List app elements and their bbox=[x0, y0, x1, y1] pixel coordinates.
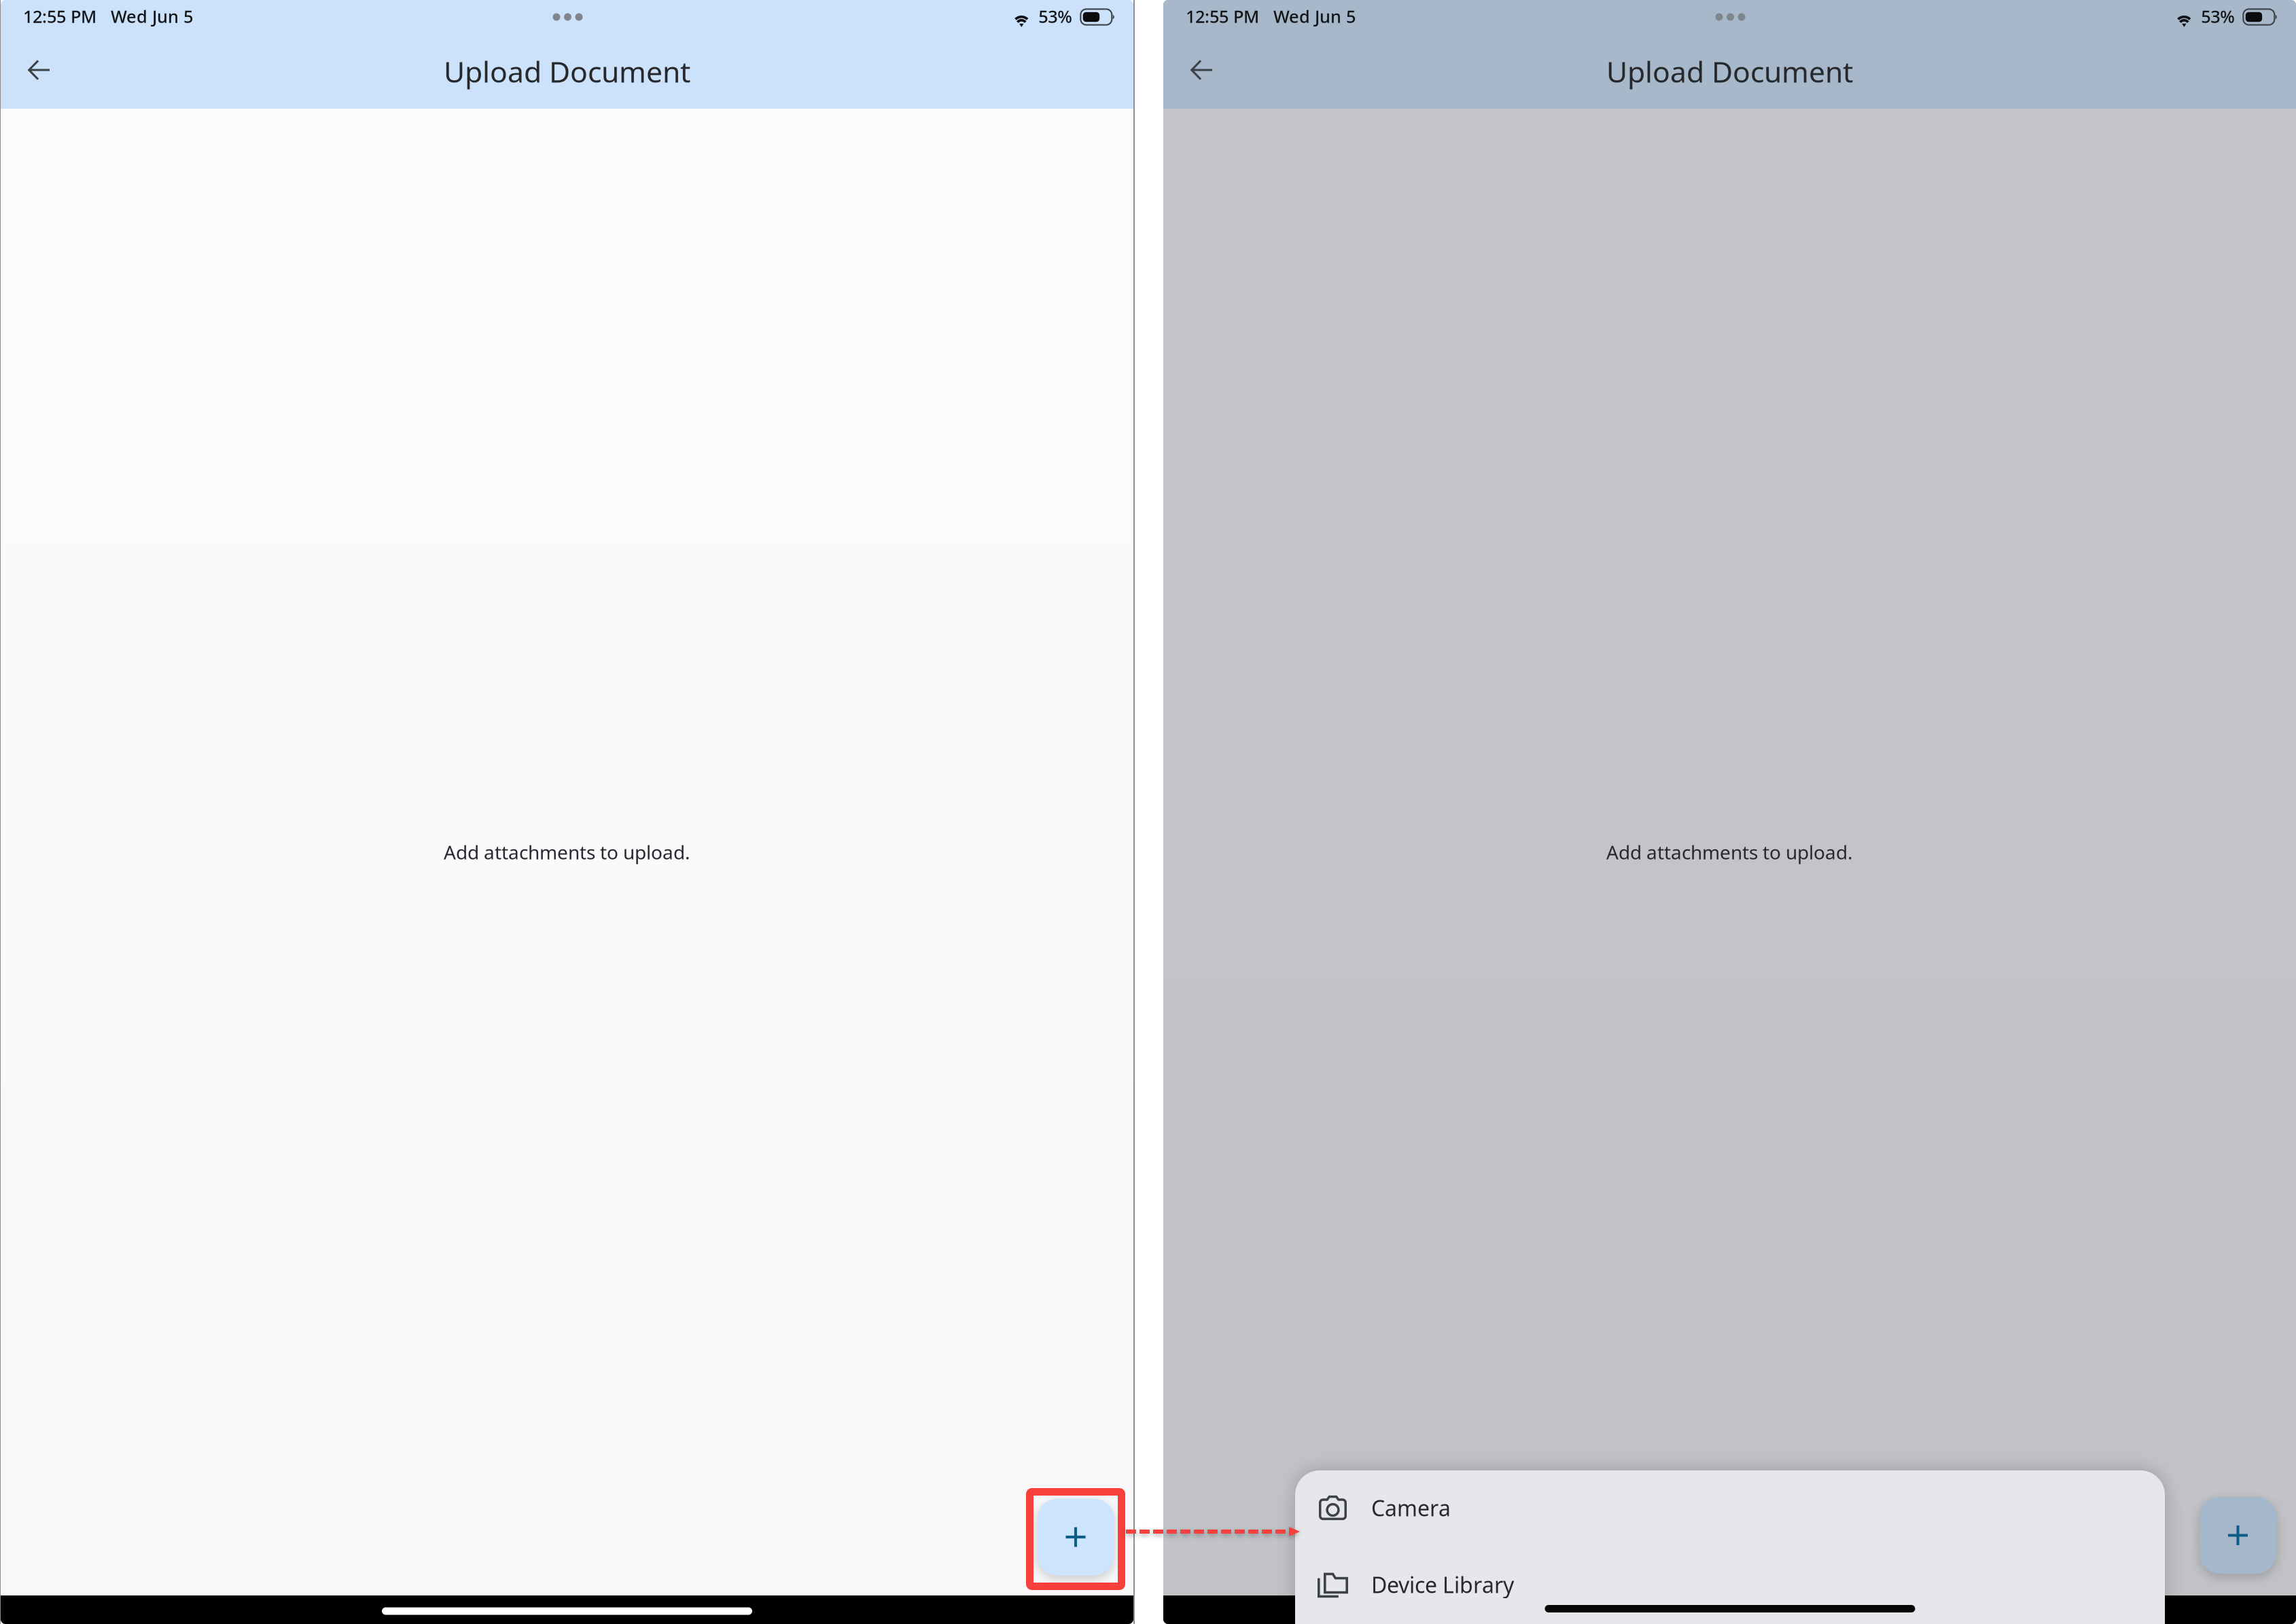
staticText: Add attachments to upload. bbox=[1606, 839, 1853, 865]
staticText: Upload Document bbox=[444, 52, 690, 91]
button[interactable]: Back bbox=[7, 42, 72, 109]
button[interactable]: Add attachment bbox=[2200, 1497, 2276, 1574]
button[interactable]: Device Library bbox=[1295, 1547, 2165, 1623]
staticText: 12:55 PM Wed Jun 5 bbox=[23, 5, 193, 28]
staticText: Add attachments to upload. bbox=[444, 839, 690, 865]
staticText: Device Library bbox=[1371, 1570, 1514, 1599]
button[interactable]: Back bbox=[1169, 42, 1235, 109]
staticText: 53% bbox=[1038, 5, 1072, 28]
button[interactable]: Add attachment bbox=[1037, 1499, 1114, 1575]
button[interactable]: Camera bbox=[1295, 1470, 2165, 1546]
staticText: 53% bbox=[2201, 5, 2235, 28]
staticText: Upload Document bbox=[1606, 52, 1853, 91]
staticText: Camera bbox=[1371, 1493, 1451, 1522]
staticText: 12:55 PM Wed Jun 5 bbox=[1186, 5, 1356, 28]
